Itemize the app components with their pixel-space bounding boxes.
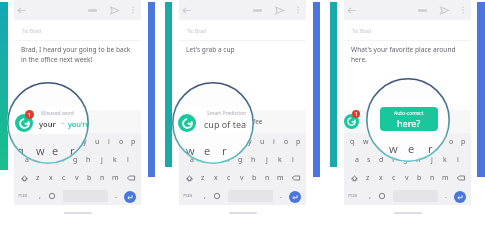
button[interactable]: Backspace: [122, 169, 139, 187]
button[interactable]: More options: [458, 5, 468, 15]
button[interactable]: ,: [364, 187, 376, 205]
button[interactable]: d: [375, 151, 387, 169]
button[interactable]: h: [412, 151, 425, 169]
button[interactable]: Emoji: [46, 187, 58, 205]
button[interactable]: t: [397, 133, 409, 151]
button[interactable]: o: [280, 133, 292, 151]
button[interactable]: h: [247, 151, 260, 169]
button[interactable]: ?123: [345, 187, 361, 205]
button[interactable]: l: [286, 151, 299, 169]
button[interactable]: n: [96, 169, 109, 187]
button[interactable]: g: [399, 151, 412, 169]
button[interactable]: l: [121, 151, 134, 169]
button[interactable]: Shift: [16, 169, 32, 187]
button[interactable]: r: [55, 133, 67, 151]
button[interactable]: v: [400, 169, 413, 187]
button[interactable]: v: [235, 169, 248, 187]
button[interactable]: y: [409, 133, 421, 151]
button[interactable]: ?123: [180, 187, 196, 205]
button[interactable]: ?123: [15, 187, 31, 205]
button[interactable]: c: [387, 169, 400, 187]
button[interactable]: u: [256, 133, 268, 151]
button[interactable]: Back: [181, 5, 192, 16]
button[interactable]: p: [127, 133, 139, 151]
button[interactable]: Attach: [87, 5, 98, 16]
button[interactable]: b: [83, 169, 96, 187]
button[interactable]: Enter: [454, 191, 466, 203]
button[interactable]: k: [438, 151, 451, 169]
button[interactable]: l: [451, 151, 464, 169]
button[interactable]: x: [374, 169, 387, 187]
button[interactable]: g: [234, 151, 247, 169]
button[interactable]: f: [222, 151, 234, 169]
button[interactable]: k: [108, 151, 121, 169]
button[interactable]: h: [82, 151, 95, 169]
button[interactable]: c: [222, 169, 235, 187]
button[interactable]: z: [362, 169, 374, 187]
button[interactable]: w: [29, 133, 42, 151]
button[interactable]: j: [260, 151, 273, 169]
button[interactable]: w: [359, 133, 372, 151]
button[interactable]: Back: [346, 5, 357, 16]
button[interactable]: n: [426, 169, 439, 187]
button[interactable]: w: [194, 133, 207, 151]
button[interactable]: ,: [34, 187, 46, 205]
button[interactable]: Shift: [181, 169, 197, 187]
button[interactable]: Attach: [417, 5, 428, 16]
button[interactable]: More options: [128, 5, 138, 15]
button[interactable]: k: [273, 151, 286, 169]
button[interactable]: z: [32, 169, 44, 187]
button[interactable]: e: [372, 133, 385, 151]
button[interactable]: u: [91, 133, 103, 151]
button[interactable]: n: [261, 169, 274, 187]
button[interactable]: m: [439, 169, 452, 187]
button[interactable]: a: [186, 151, 198, 169]
button[interactable]: p: [292, 133, 304, 151]
button[interactable]: Send: [274, 5, 285, 16]
button[interactable]: a: [351, 151, 363, 169]
button[interactable]: j: [95, 151, 108, 169]
button[interactable]: t: [67, 133, 79, 151]
button[interactable]: m: [109, 169, 122, 187]
button[interactable]: z: [197, 169, 209, 187]
button[interactable]: g: [69, 151, 82, 169]
button[interactable]: i: [268, 133, 280, 151]
button[interactable]: More options: [293, 5, 303, 15]
button[interactable]: x: [44, 169, 57, 187]
button[interactable]: s: [33, 151, 45, 169]
button[interactable]: Send: [109, 5, 120, 16]
button[interactable]: b: [413, 169, 426, 187]
button[interactable]: x: [209, 169, 222, 187]
button[interactable]: ,: [199, 187, 211, 205]
button[interactable]: i: [103, 133, 115, 151]
button[interactable]: Backspace: [452, 169, 469, 187]
button[interactable]: e: [207, 133, 220, 151]
button[interactable]: s: [198, 151, 210, 169]
button[interactable]: .: [110, 187, 121, 205]
button[interactable]: y: [79, 133, 91, 151]
button[interactable]: Send: [439, 5, 450, 16]
button[interactable]: r: [220, 133, 232, 151]
button[interactable]: .: [440, 187, 451, 205]
button[interactable]: o: [115, 133, 127, 151]
button[interactable]: j: [425, 151, 438, 169]
button[interactable]: Back: [16, 5, 27, 16]
button[interactable]: Emoji: [376, 187, 388, 205]
button[interactable]: u: [421, 133, 433, 151]
button[interactable]: c: [57, 169, 70, 187]
button[interactable]: q: [16, 133, 29, 151]
button[interactable]: e: [42, 133, 55, 151]
button[interactable]: Backspace: [287, 169, 304, 187]
button[interactable]: d: [210, 151, 222, 169]
button[interactable]: Attach: [252, 5, 263, 16]
button[interactable]: Auto-correct: [380, 107, 438, 131]
button[interactable]: p: [457, 133, 469, 151]
button[interactable]: v: [70, 169, 83, 187]
button[interactable]: s: [363, 151, 375, 169]
button[interactable]: a: [21, 151, 33, 169]
button[interactable]: f: [387, 151, 399, 169]
button[interactable]: Enter: [124, 191, 136, 203]
